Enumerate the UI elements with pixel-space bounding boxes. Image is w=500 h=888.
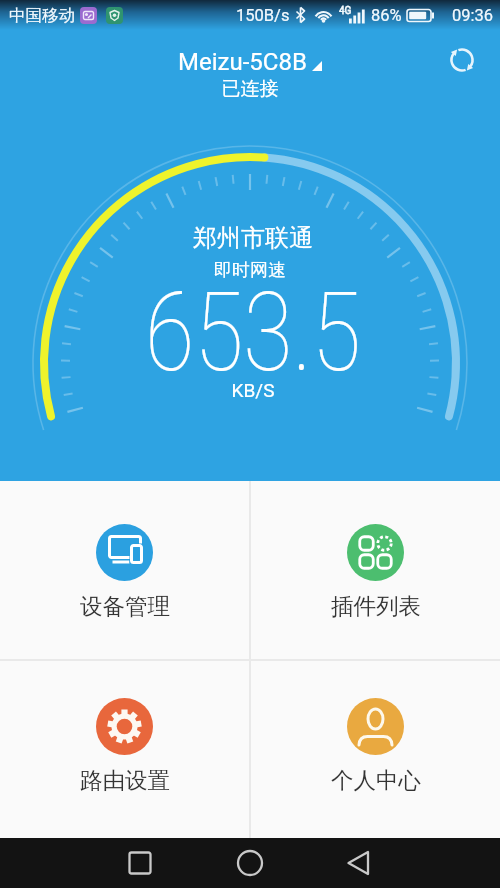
button[interactable]: 插件列表 <box>251 481 500 659</box>
staticText: 86% <box>371 6 402 25</box>
staticText: 个人中心 <box>331 766 421 794</box>
button[interactable]: 路由设置 <box>0 661 249 838</box>
staticText: Meizu-5C8B <box>178 48 307 76</box>
button[interactable] <box>228 841 272 885</box>
staticText: 设备管理 <box>80 592 170 620</box>
staticText: 插件列表 <box>331 592 421 620</box>
staticText: KB/S <box>3 379 500 401</box>
staticText: 4G <box>339 5 352 17</box>
staticText: 09:36 <box>452 6 494 25</box>
staticText: 已连接 <box>0 77 500 101</box>
staticText: 即时网速 <box>0 259 500 282</box>
button[interactable] <box>446 44 478 76</box>
button[interactable]: 设备管理 <box>0 481 249 659</box>
button[interactable]: 个人中心 <box>251 661 500 838</box>
staticText: 中国移动 <box>9 5 75 26</box>
button[interactable] <box>118 841 162 885</box>
staticText: 150B/s <box>236 6 290 25</box>
button[interactable] <box>336 841 380 885</box>
staticText: 653.5 <box>47 269 459 397</box>
staticText: 郑州市联通 <box>3 223 500 253</box>
staticText: 路由设置 <box>80 766 170 794</box>
